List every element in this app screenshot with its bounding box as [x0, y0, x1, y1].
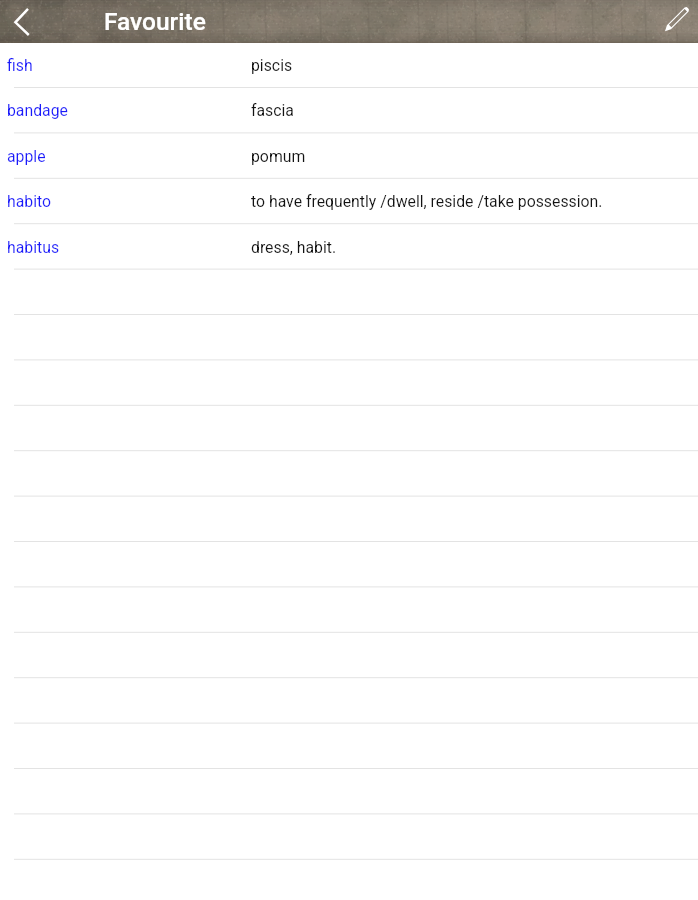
button[interactable]: habitus [0, 225, 698, 270]
button[interactable] [0, 815, 698, 860]
button[interactable] [0, 724, 698, 769]
button[interactable] [0, 361, 698, 406]
button[interactable]: apple [0, 134, 698, 179]
staticText: pomum [251, 147, 306, 166]
button[interactable]: bandage [0, 88, 698, 133]
staticText: to have frequently /dwell, reside /take … [251, 192, 603, 211]
button[interactable]: Back [0, 0, 45, 43]
button[interactable] [0, 633, 698, 678]
button[interactable] [0, 406, 698, 451]
button[interactable] [0, 588, 698, 633]
button[interactable]: habito [0, 179, 698, 224]
staticText: piscis [251, 56, 293, 75]
button[interactable]: fish [0, 43, 698, 88]
staticText: bandage [7, 101, 68, 120]
staticText: fascia [251, 101, 294, 120]
button[interactable] [0, 270, 698, 315]
staticText: fish [7, 56, 33, 75]
staticText: dress, habit. [251, 238, 337, 257]
button[interactable] [0, 497, 698, 542]
staticText: habitus [7, 238, 60, 257]
staticText: apple [7, 147, 46, 166]
staticText: Favourite [104, 7, 206, 36]
staticText: habito [7, 192, 52, 211]
button[interactable]: Edit [653, 0, 698, 43]
